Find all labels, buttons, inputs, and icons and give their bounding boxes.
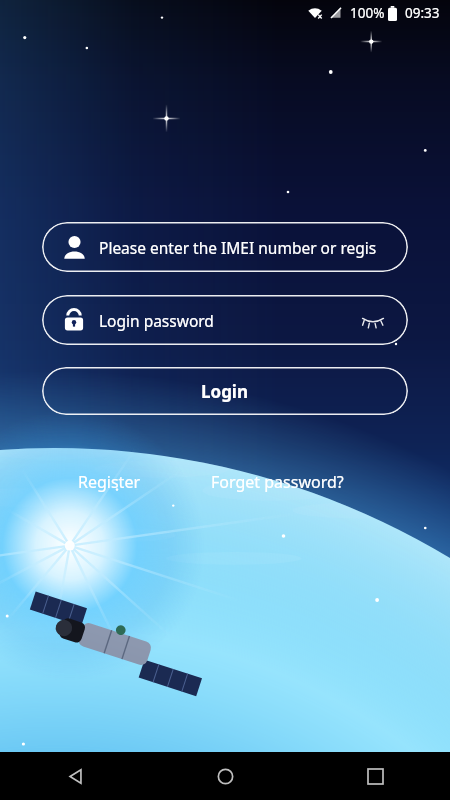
button[interactable]: Recent apps <box>300 752 450 800</box>
staticText: Forget password? <box>211 471 344 493</box>
staticText: 09:33 <box>405 4 440 22</box>
button[interactable]: Login password <box>42 295 408 345</box>
staticText: Login <box>201 380 249 403</box>
button[interactable]: Please enter the IMEI number or regis <box>42 222 408 272</box>
button[interactable]: Home <box>150 752 300 800</box>
staticText: Please enter the IMEI number or regis <box>99 237 377 258</box>
button[interactable]: Forget password? <box>207 467 348 497</box>
button[interactable]: Back <box>0 752 150 800</box>
button[interactable]: Show password <box>358 305 388 335</box>
staticText: Login password <box>99 310 214 331</box>
button[interactable]: Login <box>42 367 408 415</box>
staticText: 100% <box>350 4 385 22</box>
button[interactable]: Register <box>74 467 145 497</box>
staticText: Register <box>78 471 141 493</box>
